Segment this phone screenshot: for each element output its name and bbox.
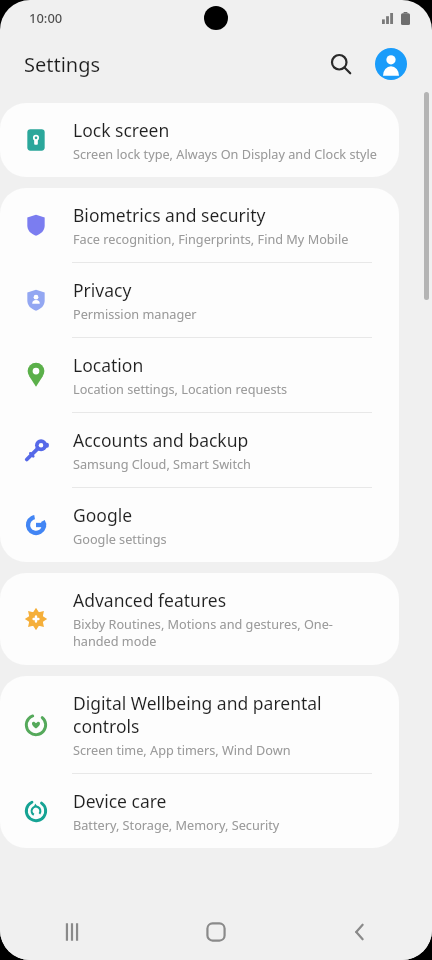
staticText: Location settings, Location requests bbox=[73, 380, 288, 397]
button[interactable]: Search bbox=[319, 42, 363, 86]
staticText: Digital Wellbeing and parental controls bbox=[73, 691, 377, 738]
staticText: Bixby Routines, Motions and gestures, On… bbox=[73, 615, 377, 650]
staticText: Biometrics and security bbox=[73, 203, 266, 227]
staticText: Face recognition, Fingerprints, Find My … bbox=[73, 230, 349, 247]
button[interactable]: Account bbox=[369, 42, 413, 86]
button[interactable]: Privacy bbox=[0, 263, 399, 337]
staticText: Google bbox=[73, 503, 133, 527]
staticText: Lock screen bbox=[73, 118, 170, 142]
staticText: Advanced features bbox=[73, 588, 227, 612]
button[interactable]: Accounts and backup bbox=[0, 413, 399, 487]
staticText: Settings bbox=[24, 51, 101, 78]
button[interactable]: Advanced features bbox=[0, 573, 399, 665]
button[interactable]: Device care bbox=[0, 774, 399, 848]
staticText: Accounts and backup bbox=[73, 428, 249, 452]
staticText: Screen lock type, Always On Display and … bbox=[73, 145, 377, 162]
button[interactable]: Lock screen bbox=[0, 103, 399, 177]
button[interactable]: Google bbox=[0, 488, 399, 562]
button[interactable]: Home bbox=[144, 903, 288, 960]
staticText: Google settings bbox=[73, 530, 167, 547]
button[interactable]: Recent apps bbox=[0, 903, 144, 960]
staticText: Permission manager bbox=[73, 305, 197, 322]
button[interactable]: Back bbox=[288, 903, 432, 960]
staticText: Battery, Storage, Memory, Security bbox=[73, 816, 280, 833]
staticText: Device care bbox=[73, 789, 167, 813]
staticText: 10:00 bbox=[29, 9, 63, 27]
staticText: Samsung Cloud, Smart Switch bbox=[73, 455, 251, 472]
button[interactable]: Digital Wellbeing and parental controls bbox=[0, 676, 399, 773]
staticText: Privacy bbox=[73, 278, 132, 302]
staticText: Location bbox=[73, 353, 144, 377]
button[interactable]: Location bbox=[0, 338, 399, 412]
staticText: Screen time, App timers, Wind Down bbox=[73, 741, 291, 758]
button[interactable]: Biometrics and security bbox=[0, 188, 399, 262]
